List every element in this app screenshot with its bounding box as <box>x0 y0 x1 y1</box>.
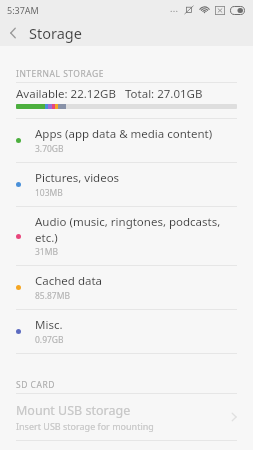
staticText: Available: 22.12GB <box>16 86 116 102</box>
staticText: Total: 27.01GB <box>125 86 203 102</box>
staticText: INTERNAL STORAGE <box>16 68 104 80</box>
button[interactable]: Apps (app data & media content) <box>0 119 253 162</box>
staticText: Audio (music, ringtones, podcasts, etc.) <box>35 214 237 245</box>
staticText: 5:37AM <box>7 4 39 16</box>
button[interactable]: Pictures, videos <box>0 163 253 206</box>
staticText: Storage <box>29 23 82 43</box>
staticText: Insert USB storage for mounting <box>16 420 154 432</box>
staticText: Mount USB storage <box>16 402 131 419</box>
button[interactable]: Cached data <box>0 266 253 309</box>
staticText: 31MB <box>35 246 58 258</box>
button[interactable]: Back <box>0 19 26 46</box>
staticText: Cached data <box>35 273 103 289</box>
staticText: Pictures, videos <box>35 170 120 186</box>
staticText: 3.70GB <box>35 143 64 155</box>
staticText: Apps (app data & media content) <box>35 126 213 142</box>
button[interactable]: Audio (music, ringtones, podcasts, etc.) <box>0 207 253 265</box>
staticText: SD CARD <box>16 379 55 391</box>
staticText: 0.97GB <box>35 334 64 346</box>
staticText: Misc. <box>35 317 63 333</box>
staticText: 85.87MB <box>35 290 70 302</box>
button[interactable]: Mount USB storage <box>0 394 253 440</box>
button[interactable]: Misc. <box>0 310 253 353</box>
staticText: 103MB <box>35 187 63 199</box>
